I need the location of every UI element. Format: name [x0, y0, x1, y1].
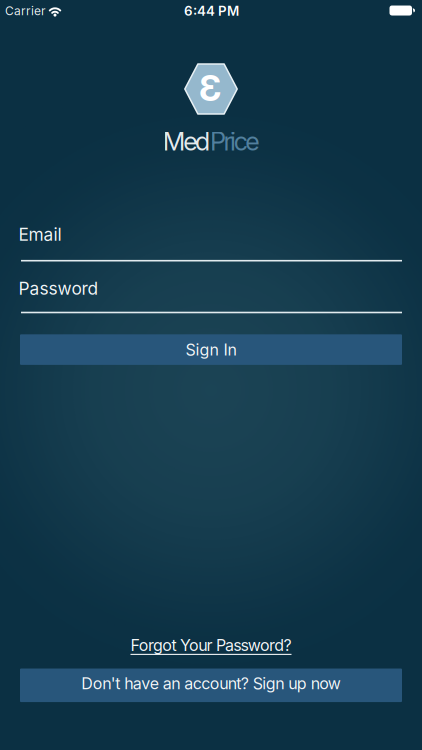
staticText: Sign In	[185, 340, 236, 359]
button[interactable]: Don't have an account? Sign up now	[20, 668, 402, 702]
textField[interactable]: Password	[20, 279, 402, 316]
staticText: Ɛ	[199, 67, 222, 109]
staticText: Email	[18, 224, 61, 245]
staticText: Med	[163, 126, 210, 156]
staticText: 6:44 PM	[184, 3, 239, 19]
staticText: Price	[210, 126, 259, 156]
staticText: Forgot Your Password?	[130, 636, 291, 655]
button[interactable]: Sign In	[20, 334, 402, 365]
button[interactable]: Forgot Your Password?	[130, 636, 291, 655]
staticText: Don't have an account? Sign up now	[81, 674, 341, 693]
staticText: Carrier	[5, 4, 46, 18]
staticText: Password	[18, 278, 98, 299]
textField[interactable]: Email	[20, 225, 402, 262]
